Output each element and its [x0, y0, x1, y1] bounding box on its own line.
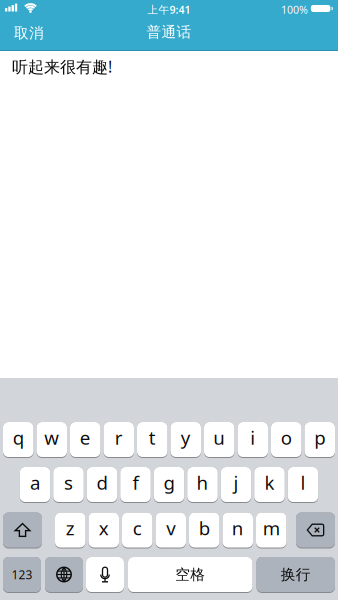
button[interactable]: j: [221, 467, 251, 503]
button[interactable]: s: [53, 467, 84, 503]
staticText: h: [196, 470, 208, 495]
staticText: w: [44, 425, 59, 450]
staticText: 空格: [175, 565, 205, 583]
button[interactable]: q: [3, 422, 33, 458]
button[interactable]: z: [55, 512, 85, 548]
staticText: m: [263, 516, 280, 540]
staticText: s: [64, 470, 73, 495]
staticText: y: [181, 425, 191, 450]
staticText: o: [281, 425, 292, 450]
button[interactable]: d: [87, 467, 117, 503]
staticText: e: [80, 425, 91, 450]
staticText: 上午9:41: [147, 2, 190, 17]
button[interactable]: x: [88, 512, 119, 548]
button[interactable]: f: [120, 467, 151, 503]
staticText: u: [213, 425, 225, 450]
button[interactable]: m: [256, 512, 286, 548]
staticText: n: [232, 516, 244, 540]
staticText: 取消: [14, 24, 44, 42]
staticText: c: [133, 516, 142, 540]
staticText: a: [30, 470, 40, 495]
staticText: k: [264, 470, 274, 495]
button[interactable]: i: [237, 422, 268, 458]
staticText: l: [300, 470, 305, 495]
button[interactable]: k: [254, 467, 285, 503]
button[interactable]: Numbers: [3, 557, 41, 593]
button[interactable]: y: [170, 422, 201, 458]
staticText: f: [132, 470, 138, 495]
staticText: i: [250, 425, 255, 450]
button[interactable]: w: [36, 422, 67, 458]
staticText: 普通话: [146, 23, 191, 41]
button[interactable]: u: [204, 422, 234, 458]
button[interactable]: v: [155, 512, 186, 548]
staticText: d: [96, 470, 107, 495]
staticText: b: [199, 516, 210, 540]
staticText: v: [166, 516, 175, 540]
button[interactable]: n: [222, 512, 253, 548]
button[interactable]: b: [189, 512, 219, 548]
button[interactable]: Shift: [3, 512, 42, 548]
button[interactable]: Delete: [296, 512, 335, 548]
button[interactable]: o: [271, 422, 301, 458]
staticText: q: [13, 425, 24, 450]
button[interactable]: t: [137, 422, 167, 458]
button[interactable]: 换行: [256, 557, 335, 593]
staticText: g: [163, 470, 174, 495]
staticText: 听起来很有趣!: [12, 56, 112, 77]
button[interactable]: p: [304, 422, 335, 458]
staticText: 100%: [281, 2, 308, 17]
button[interactable]: g: [154, 467, 184, 503]
staticText: t: [149, 425, 156, 450]
staticText: 换行: [281, 565, 311, 583]
button[interactable]: h: [187, 467, 218, 503]
staticText: 123: [11, 566, 32, 582]
staticText: z: [66, 516, 75, 540]
button[interactable]: 取消: [14, 25, 44, 43]
button[interactable]: Next keyboard: [45, 557, 83, 593]
staticText: j: [233, 470, 238, 495]
button[interactable]: c: [122, 512, 152, 548]
staticText: p: [314, 425, 325, 450]
button[interactable]: a: [20, 467, 50, 503]
button[interactable]: 空格: [128, 557, 252, 593]
button[interactable]: r: [103, 422, 134, 458]
staticText: x: [99, 516, 109, 540]
button[interactable]: Dictation: [86, 557, 124, 593]
staticText: r: [115, 425, 123, 450]
button[interactable]: e: [70, 422, 100, 458]
button[interactable]: l: [288, 467, 318, 503]
